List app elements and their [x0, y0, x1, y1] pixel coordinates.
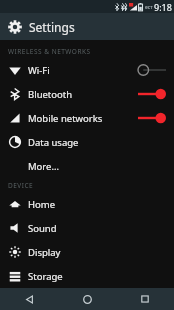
staticText: Home — [28, 198, 56, 211]
button[interactable]: Mobile networks — [0, 106, 174, 130]
staticText: Mobile networks — [28, 112, 103, 125]
button[interactable]: More… — [0, 154, 174, 178]
button[interactable]: Recent apps — [116, 288, 174, 310]
staticText: Storage — [28, 270, 63, 283]
button[interactable]: Data usage — [0, 130, 174, 154]
button[interactable]: Back — [0, 288, 58, 310]
button[interactable]: Display — [0, 240, 174, 264]
staticText: Sound — [28, 222, 57, 235]
staticText: ест — [145, 4, 153, 11]
staticText: WIRELESS & NETWORKS — [8, 47, 91, 56]
button[interactable]: Home — [0, 192, 174, 216]
staticText: Bluetooth — [28, 88, 73, 101]
button[interactable]: Off — [136, 62, 168, 78]
other: Settings — [8, 20, 22, 34]
button[interactable]: Storage — [0, 264, 174, 288]
button[interactable]: Bluetooth — [0, 82, 174, 106]
staticText: 9:18 — [154, 1, 172, 13]
button[interactable]: Home — [58, 288, 116, 310]
button[interactable]: Wi-Fi — [0, 58, 174, 82]
staticText: Settings — [29, 19, 75, 35]
staticText: Data usage — [28, 136, 79, 149]
button[interactable]: Sound — [0, 216, 174, 240]
staticText: Display — [28, 246, 61, 259]
staticText: Wi-Fi — [28, 64, 50, 77]
staticText: DEVICE — [8, 181, 34, 190]
staticText: More… — [28, 160, 59, 173]
button[interactable]: Settings — [0, 13, 174, 40]
button[interactable]: On — [136, 110, 168, 126]
button[interactable]: On — [136, 86, 168, 102]
